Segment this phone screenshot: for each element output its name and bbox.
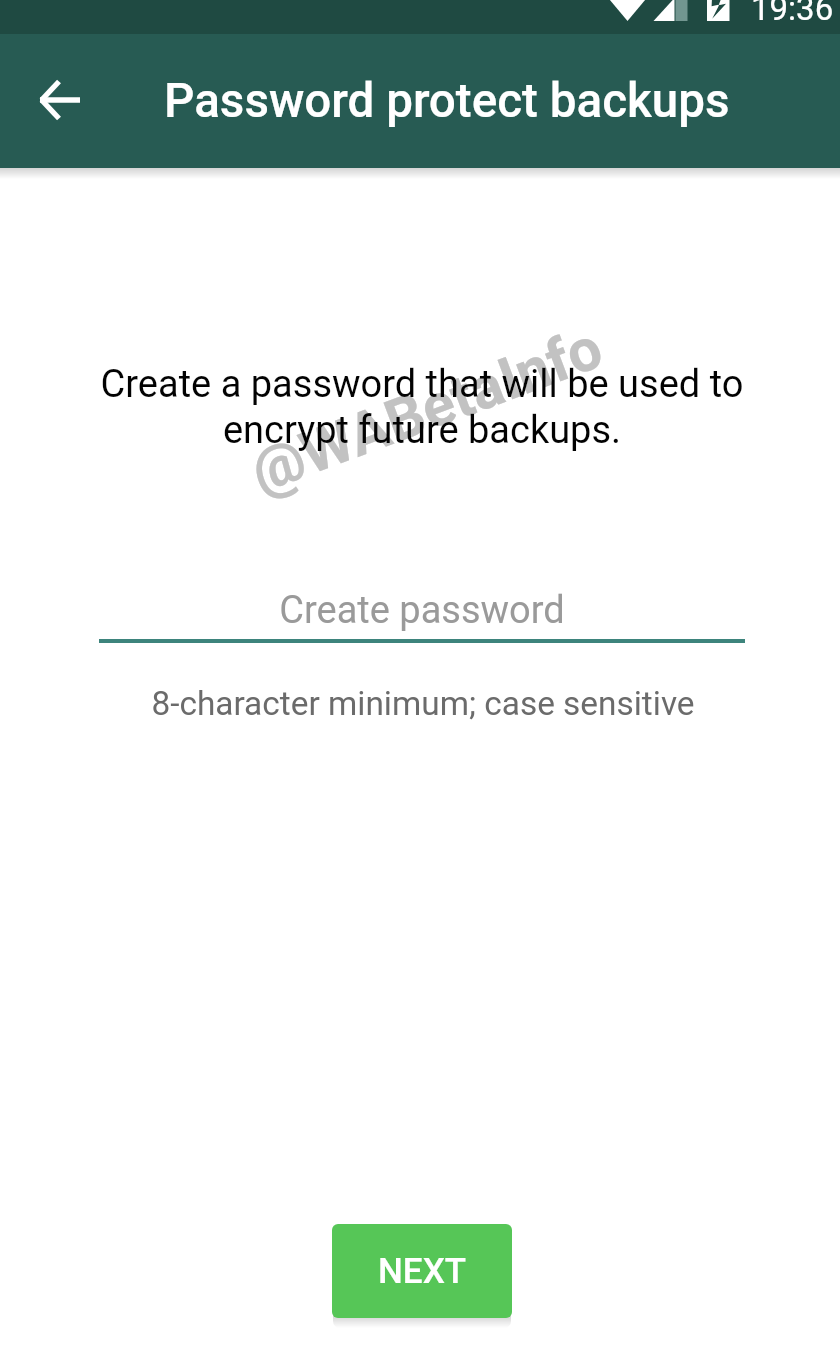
staticText: @WABetaInfo xyxy=(242,313,611,506)
button[interactable]: NEXT xyxy=(332,1224,512,1318)
button[interactable]: Navigate up xyxy=(16,57,104,145)
staticText: Password protect backups xyxy=(164,73,730,129)
staticText: NEXT xyxy=(378,1251,467,1292)
staticText: 8-character minimum; case sensitive xyxy=(3,684,840,723)
staticText: Create a password that will be used to e… xyxy=(2,362,840,452)
button[interactable]: Create password xyxy=(99,576,745,643)
staticText: Create password xyxy=(99,588,745,633)
staticText: 19:36 xyxy=(751,0,834,23)
